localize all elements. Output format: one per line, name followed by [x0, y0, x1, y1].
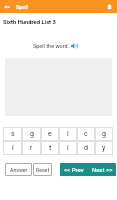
button[interactable]: g	[22, 127, 41, 141]
staticText: c	[84, 130, 88, 138]
staticText: Next >>	[92, 166, 113, 173]
staticText: e	[48, 130, 52, 138]
staticText: Spell the word	[33, 43, 68, 49]
button[interactable]: Home	[102, 0, 117, 13]
staticText: l	[67, 130, 69, 138]
button[interactable]: c	[77, 127, 95, 141]
staticText: Spell	[16, 4, 28, 10]
button[interactable]: Next >>	[88, 163, 116, 176]
button[interactable]: Answer	[5, 163, 32, 176]
button[interactable]: i	[59, 141, 77, 155]
button[interactable]: t	[41, 141, 59, 155]
staticText: s	[11, 130, 15, 138]
button[interactable]: g	[95, 127, 113, 141]
button[interactable]: l	[59, 127, 77, 141]
button[interactable]: e	[41, 127, 59, 141]
button[interactable]: l	[3, 141, 22, 155]
staticText: i	[67, 144, 69, 152]
staticText: Reset	[36, 167, 50, 173]
staticText: Answer	[10, 167, 28, 173]
button[interactable]: Back	[0, 0, 13, 13]
button[interactable]: << Prev	[60, 163, 88, 176]
staticText: y	[102, 144, 106, 152]
button[interactable]: r	[22, 141, 41, 155]
staticText: << Prev	[64, 166, 84, 173]
staticText: d	[84, 144, 88, 152]
button[interactable]: s	[3, 127, 22, 141]
staticText: Sixth Hundred List 3	[3, 19, 56, 26]
staticText: t	[49, 144, 52, 152]
staticText: r	[30, 144, 33, 152]
button[interactable]: y	[95, 141, 113, 155]
button[interactable]: Reset	[33, 163, 52, 176]
button[interactable]: d	[77, 141, 95, 155]
button[interactable]: Play sound	[70, 42, 78, 50]
staticText: l	[12, 144, 14, 152]
staticText: g	[30, 130, 34, 138]
staticText: g	[102, 130, 106, 138]
